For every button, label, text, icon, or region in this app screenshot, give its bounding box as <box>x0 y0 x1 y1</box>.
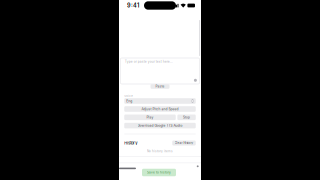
staticText: Paste <box>155 85 164 88</box>
staticText: No history items <box>147 149 173 153</box>
staticText: Save to history <box>147 171 171 174</box>
staticText: 9:41 <box>127 2 139 9</box>
button[interactable]: Clear History <box>172 140 196 145</box>
button[interactable]: Adjust Pitch and Speed <box>124 106 196 112</box>
button[interactable]: Paste <box>150 84 169 89</box>
staticText: History <box>124 141 137 145</box>
button[interactable]: Play <box>124 114 176 120</box>
staticText: Stop <box>183 115 190 119</box>
staticText: Eng <box>126 99 132 103</box>
button[interactable]: Eng <box>124 98 196 104</box>
button[interactable]: More <box>195 163 201 169</box>
staticText: Clear History <box>174 141 193 145</box>
staticText: Voice <box>124 94 133 98</box>
button[interactable]: Stop <box>177 114 196 120</box>
staticText: Type or paste your text here... <box>125 60 173 64</box>
button[interactable]: Dictate <box>194 79 197 82</box>
staticText: Play <box>146 115 153 119</box>
staticText: Adjust Pitch and Speed <box>141 107 178 111</box>
staticText: Download Google TTS Audio <box>137 124 182 128</box>
button[interactable]: Save to history <box>142 169 176 176</box>
button[interactable]: Download Google TTS Audio <box>124 123 196 128</box>
